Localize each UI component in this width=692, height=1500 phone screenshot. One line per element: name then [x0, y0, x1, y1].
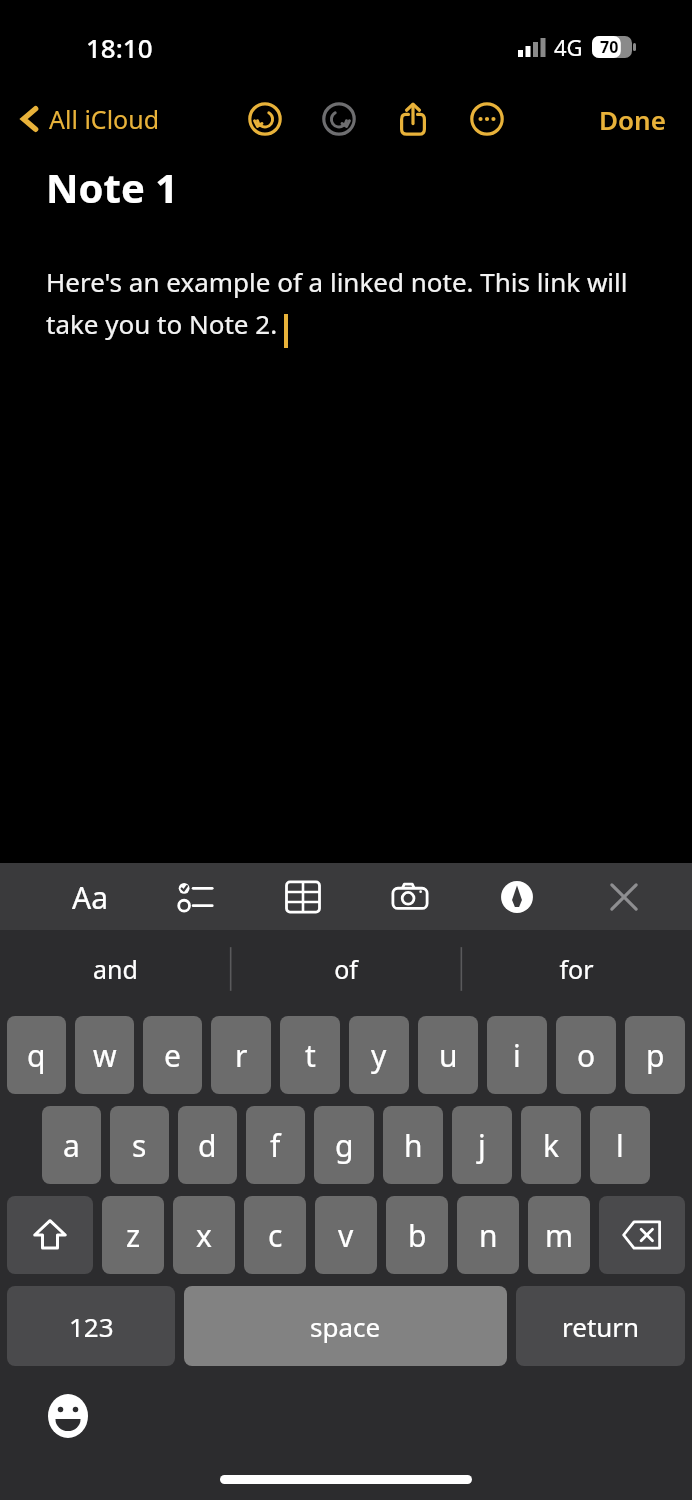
staticText: 18:10 — [86, 30, 153, 65]
button[interactable]: j — [452, 1106, 512, 1184]
staticText: 4G — [554, 32, 583, 62]
staticText: Note 1 — [46, 160, 179, 214]
staticText: of — [334, 952, 358, 986]
staticText: b — [408, 1215, 427, 1256]
button[interactable]: of — [230, 930, 461, 1008]
button[interactable]: v — [315, 1196, 377, 1274]
button[interactable]: Emoji — [40, 1388, 96, 1444]
staticText: Here's an example of a linked note. This… — [46, 264, 652, 342]
staticText: m — [545, 1215, 574, 1256]
button[interactable]: Text format — [62, 867, 118, 927]
staticText: q — [27, 1035, 46, 1076]
staticText: o — [577, 1035, 596, 1076]
button[interactable]: k — [521, 1106, 581, 1184]
button[interactable]: Shift — [7, 1196, 93, 1274]
staticText: z — [126, 1215, 141, 1256]
button[interactable]: s — [110, 1106, 169, 1184]
staticText: g — [335, 1125, 354, 1166]
staticText: r — [235, 1035, 248, 1076]
staticText: 123 — [69, 1309, 114, 1344]
button[interactable]: t — [280, 1016, 340, 1094]
button[interactable]: Share — [391, 97, 435, 141]
staticText: e — [164, 1035, 181, 1076]
staticText: return — [562, 1309, 640, 1344]
staticText: 70 — [600, 36, 619, 58]
button[interactable]: x — [173, 1196, 235, 1274]
button[interactable]: Backspace — [599, 1196, 685, 1274]
staticText: space — [310, 1309, 381, 1344]
button[interactable]: y — [349, 1016, 409, 1094]
button[interactable]: w — [75, 1016, 134, 1094]
button[interactable]: l — [590, 1106, 650, 1184]
staticText: i — [513, 1035, 521, 1076]
button[interactable]: Done — [591, 96, 674, 143]
button[interactable]: r — [211, 1016, 271, 1094]
button[interactable]: c — [244, 1196, 306, 1274]
staticText: x — [196, 1215, 212, 1256]
button[interactable]: Undo — [243, 97, 287, 141]
button[interactable]: 123 — [7, 1286, 175, 1366]
button[interactable]: space — [184, 1286, 507, 1366]
button[interactable]: g — [314, 1106, 374, 1184]
button[interactable]: e — [143, 1016, 202, 1094]
staticText: f — [270, 1125, 281, 1166]
button[interactable]: d — [178, 1106, 237, 1184]
button[interactable]: Close keyboard — [596, 867, 652, 927]
staticText: p — [646, 1035, 665, 1076]
staticText: l — [616, 1125, 624, 1166]
staticText: and — [93, 952, 138, 986]
button[interactable]: f — [246, 1106, 305, 1184]
button[interactable]: h — [383, 1106, 443, 1184]
button[interactable]: z — [102, 1196, 164, 1274]
button[interactable]: a — [42, 1106, 101, 1184]
button[interactable]: n — [457, 1196, 519, 1274]
button[interactable]: Checklist — [168, 867, 224, 927]
staticText: v — [338, 1215, 354, 1256]
staticText: s — [132, 1125, 147, 1166]
button[interactable]: for — [461, 930, 692, 1008]
staticText: c — [268, 1215, 283, 1256]
staticText: h — [404, 1125, 423, 1166]
staticText: All iCloud — [49, 102, 160, 136]
button[interactable]: and — [0, 930, 230, 1008]
staticText: for — [559, 952, 594, 986]
staticText: n — [479, 1215, 498, 1256]
button[interactable]: Markup — [489, 867, 545, 927]
button[interactable]: p — [625, 1016, 685, 1094]
staticText: k — [543, 1125, 560, 1166]
button[interactable]: m — [528, 1196, 590, 1274]
staticText: t — [305, 1035, 316, 1076]
staticText: Aa — [72, 877, 108, 918]
staticText: y — [371, 1035, 387, 1076]
staticText: j — [478, 1125, 486, 1166]
staticText: Done — [599, 102, 666, 137]
button[interactable]: More options — [465, 97, 509, 141]
button[interactable]: Camera — [382, 867, 438, 927]
button[interactable]: b — [386, 1196, 448, 1274]
staticText: u — [439, 1035, 458, 1076]
button[interactable]: Table — [275, 867, 331, 927]
button[interactable]: i — [487, 1016, 547, 1094]
button[interactable]: Redo — [317, 97, 361, 141]
staticText: a — [63, 1125, 80, 1166]
staticText: d — [198, 1125, 217, 1166]
button[interactable]: return — [516, 1286, 685, 1366]
button[interactable]: All iCloud — [14, 96, 166, 142]
button[interactable]: u — [418, 1016, 478, 1094]
button[interactable]: q — [7, 1016, 66, 1094]
staticText: w — [93, 1035, 117, 1076]
button[interactable]: o — [556, 1016, 616, 1094]
